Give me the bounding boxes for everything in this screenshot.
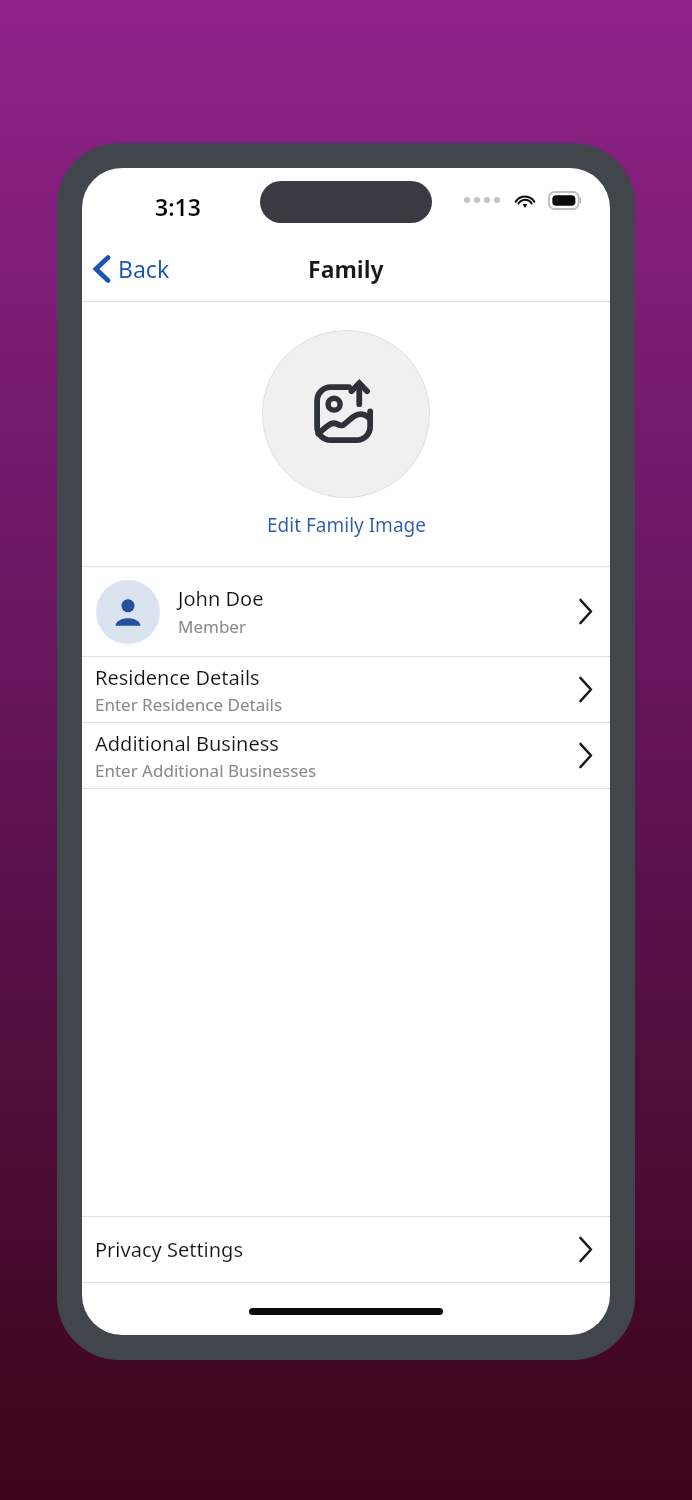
button[interactable]: Privacy Settings (82, 1217, 610, 1282)
staticText: 3:13 (155, 191, 201, 222)
button[interactable]: Additional Business (82, 723, 610, 788)
button[interactable]: Edit Family Image (267, 512, 426, 538)
staticText: Member (178, 615, 246, 638)
staticText: Additional Business (95, 730, 279, 757)
staticText: Back (118, 253, 170, 284)
button[interactable]: Edit Family Image (262, 330, 430, 498)
button[interactable]: Residence Details (82, 657, 610, 722)
staticText: Privacy Settings (95, 1236, 243, 1263)
staticText: John Doe (178, 585, 264, 612)
staticText: Enter Additional Businesses (95, 759, 317, 782)
staticText: Residence Details (95, 664, 260, 691)
button[interactable]: Back (82, 245, 184, 292)
staticText: Edit Family Image (267, 512, 426, 538)
staticText: Enter Residence Details (95, 693, 283, 716)
button[interactable]: John Doe (82, 567, 610, 656)
staticText: Family (308, 253, 384, 284)
